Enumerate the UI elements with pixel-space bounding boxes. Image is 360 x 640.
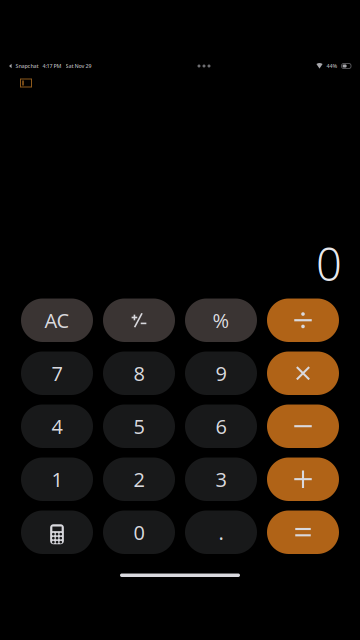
button[interactable]: Multiply [267,351,339,395]
staticText: 3 [215,466,226,493]
button[interactable]: 6 [185,404,257,448]
button[interactable]: Plus [267,457,339,501]
staticText: 9 [215,360,226,387]
staticText: 7 [51,360,62,387]
button[interactable]: Calculator [21,510,93,554]
staticText: 4 [51,413,62,440]
button[interactable]: Equals [267,510,339,554]
button[interactable]: 5 [103,404,175,448]
button[interactable]: 1 [21,457,93,501]
button[interactable]: Minus [267,404,339,448]
button[interactable]: Percent [185,298,257,342]
button[interactable]: 7 [21,351,93,395]
button[interactable]: . [185,510,257,554]
button[interactable]: 3 [185,457,257,501]
staticText: AC [44,307,69,334]
button[interactable]: Show Sidebar [16,74,36,91]
staticText: 1 [51,466,62,493]
button[interactable]: 4 [21,404,93,448]
staticText: 0 [316,233,342,293]
staticText: 0 [133,519,144,546]
button[interactable]: All Clear [21,298,93,342]
button[interactable]: 0 [103,510,175,554]
button[interactable]: Plus Minus [103,298,175,342]
staticText: Sat Nov 29 [66,62,92,70]
staticText: 2 [133,466,144,493]
button[interactable]: Divide [267,298,339,342]
staticText: . [218,519,223,546]
staticText: 5 [133,413,144,440]
staticText: Snapchat [16,62,39,70]
staticText: 6 [215,413,226,440]
button[interactable]: 2 [103,457,175,501]
staticText: 44% [327,62,338,70]
button[interactable]: 8 [103,351,175,395]
staticText: % [212,307,229,334]
button[interactable]: 9 [185,351,257,395]
staticText: 8 [133,360,144,387]
staticText: 4:17 PM [43,62,62,70]
